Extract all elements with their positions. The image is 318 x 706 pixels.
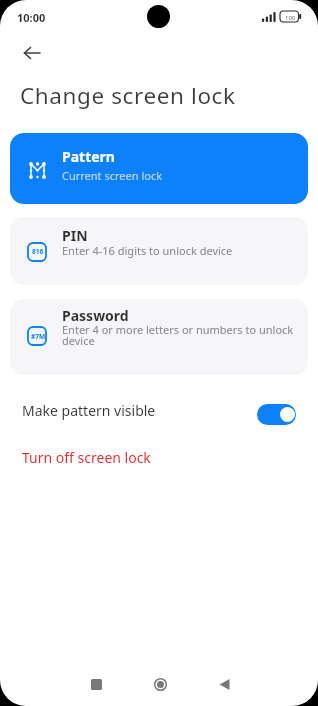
staticText: Enter 4-16 digits to unlock device [62, 243, 233, 258]
button[interactable]: Pattern [10, 133, 308, 204]
staticText: 10:00 [17, 10, 46, 25]
staticText: Turn off screen lock [22, 448, 151, 467]
button[interactable] [212, 672, 236, 696]
staticText: PIN [62, 226, 88, 245]
button[interactable]: Turn off screen lock [0, 443, 318, 471]
staticText: 100 [285, 14, 296, 22]
staticText: Enter 4 or more letters or numbers to un… [62, 322, 294, 337]
staticText: Password [62, 306, 129, 325]
button[interactable] [148, 672, 172, 696]
staticText: Change screen lock [20, 80, 236, 111]
staticText: Current screen lock [62, 168, 163, 183]
button[interactable]: 816 [10, 217, 308, 285]
button[interactable]: Make pattern visible [0, 396, 318, 432]
button[interactable] [14, 38, 52, 68]
button[interactable] [84, 672, 108, 696]
staticText: device [62, 333, 95, 348]
button[interactable]: #7M [10, 299, 308, 375]
staticText: Pattern [62, 147, 115, 166]
staticText: Make pattern visible [22, 401, 156, 420]
staticText: #7M [31, 332, 46, 341]
staticText: 816 [32, 247, 44, 256]
